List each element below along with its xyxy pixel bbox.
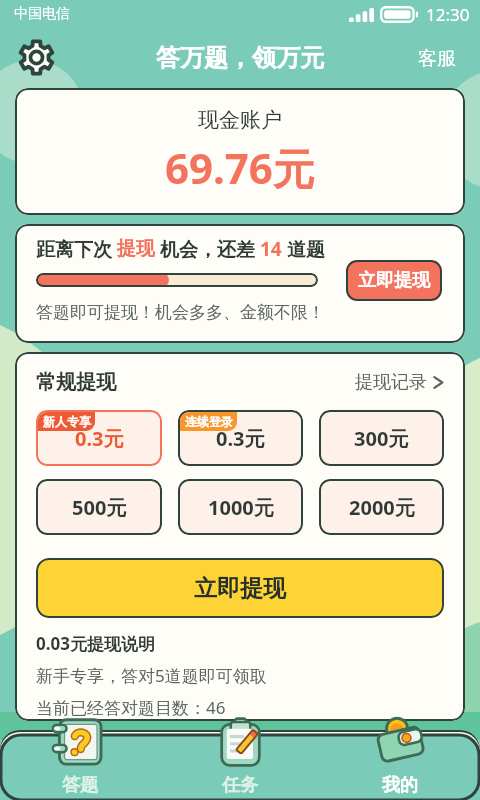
button[interactable]: 1000元 bbox=[178, 479, 303, 535]
staticText: 500元 bbox=[72, 494, 127, 521]
button[interactable]: Settings bbox=[17, 38, 56, 77]
staticText: 14 bbox=[260, 236, 282, 262]
button[interactable]: 0.3元 bbox=[178, 410, 303, 466]
staticText: 答题 bbox=[62, 774, 98, 797]
staticText: 现金账户 bbox=[198, 107, 282, 133]
staticText: 0.3元 bbox=[216, 425, 265, 452]
button[interactable]: 提现记录 bbox=[355, 371, 444, 394]
staticText: 当前已经答对题目数：46 bbox=[36, 696, 226, 719]
staticText: 常规提现 bbox=[36, 370, 116, 395]
staticText: 我的 bbox=[382, 774, 418, 797]
staticText: 答万题，领万元 bbox=[156, 43, 324, 73]
staticText: 69.76元 bbox=[165, 139, 315, 196]
button[interactable]: 客服 bbox=[418, 47, 456, 71]
staticText: 新人专享 bbox=[43, 414, 91, 429]
staticText: 12:30 bbox=[426, 3, 470, 26]
button[interactable]: 立即提现 bbox=[36, 558, 444, 618]
staticText: 0.03元提现说明 bbox=[36, 632, 155, 655]
staticText: 道题 bbox=[282, 236, 325, 262]
staticText: 机会，还差 bbox=[155, 236, 260, 262]
staticText: 新手专享，答对5道题即可领取 bbox=[36, 664, 267, 687]
button[interactable]: 答题 bbox=[0, 716, 160, 800]
staticText: 客服 bbox=[418, 47, 456, 71]
staticText: 任务 bbox=[222, 774, 258, 797]
staticText: 300元 bbox=[354, 425, 409, 452]
staticText: 1000元 bbox=[208, 494, 274, 521]
button[interactable]: 300元 bbox=[319, 410, 444, 466]
staticText: 提现 bbox=[117, 237, 155, 261]
button[interactable]: 2000元 bbox=[319, 479, 444, 535]
button[interactable]: 任务 bbox=[160, 716, 320, 800]
staticText: 立即提现 bbox=[358, 269, 430, 292]
staticText: 0.3元 bbox=[75, 425, 124, 452]
button[interactable]: 我的 bbox=[320, 716, 480, 800]
staticText: 答题即可提现！机会多多、金额不限！ bbox=[36, 302, 325, 323]
button[interactable]: 立即提现 bbox=[346, 260, 442, 301]
staticText: 距离下次 bbox=[36, 236, 117, 262]
staticText: 提现记录 bbox=[355, 371, 427, 394]
staticText: 2000元 bbox=[349, 494, 415, 521]
button[interactable]: 0.3元 bbox=[36, 410, 162, 466]
staticText: 连续登录 bbox=[185, 414, 233, 429]
staticText: 立即提现 bbox=[194, 574, 286, 603]
button[interactable]: 500元 bbox=[36, 479, 162, 535]
staticText: 中国电信 bbox=[14, 5, 70, 23]
